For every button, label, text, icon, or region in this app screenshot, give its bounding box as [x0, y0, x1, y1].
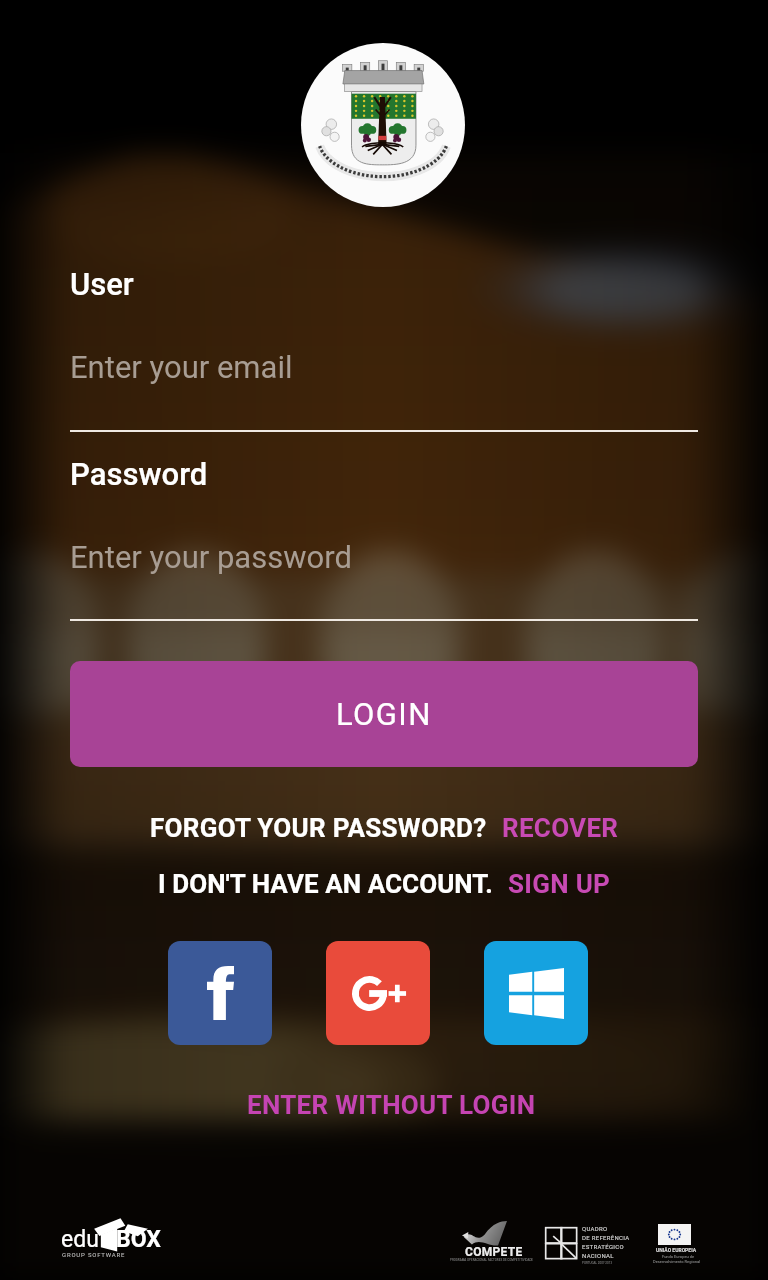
- staticText: ENTER WITHOUT LOGIN: [247, 1090, 536, 1120]
- staticText: BOX: [116, 1226, 161, 1253]
- staticText: PROGRAMA OPERACIONAL FACTORES DE COMPETI…: [450, 1258, 534, 1262]
- button[interactable]: LOGIN: [70, 661, 698, 767]
- button[interactable]: Sign in with Facebook: [168, 941, 272, 1045]
- button[interactable]: Sign in with Google: [326, 941, 430, 1045]
- button[interactable]: Sign in with Microsoft: [484, 941, 588, 1045]
- staticText: NACIONAL: [582, 1252, 614, 1259]
- staticText: RECOVER: [502, 813, 619, 843]
- staticText: COMPETE: [465, 1245, 523, 1259]
- staticText: Desenvolvimento Regional: [653, 1259, 701, 1264]
- staticText: FORGOT YOUR PASSWORD?: [150, 813, 487, 843]
- staticText: ESTRATÉGICO: [582, 1243, 624, 1250]
- staticText: Enter your email: [70, 349, 293, 385]
- staticText: Fundo Europeu de: [662, 1254, 695, 1259]
- staticText: edu: [61, 1226, 99, 1253]
- staticText: SIGN UP: [508, 869, 611, 899]
- staticText: PORTUGAL 2007-2013: [582, 1261, 613, 1265]
- staticText: UNIÃO EUROPEIA: [656, 1247, 696, 1253]
- button[interactable]: ENTER WITHOUT LOGIN: [247, 1090, 536, 1120]
- button[interactable]: SIGN UP: [508, 869, 611, 899]
- staticText: DE REFERÊNCIA: [582, 1234, 630, 1241]
- staticText: Enter your password: [70, 539, 352, 575]
- staticText: LOGIN: [336, 696, 432, 732]
- staticText: I DON'T HAVE AN ACCOUNT.: [158, 869, 493, 899]
- staticText: Password: [70, 456, 208, 492]
- staticText: User: [70, 266, 134, 302]
- staticText: QUADRO: [582, 1225, 608, 1232]
- staticText: GROUP SOFTWARE: [62, 1251, 126, 1258]
- button[interactable]: RECOVER: [502, 813, 619, 843]
